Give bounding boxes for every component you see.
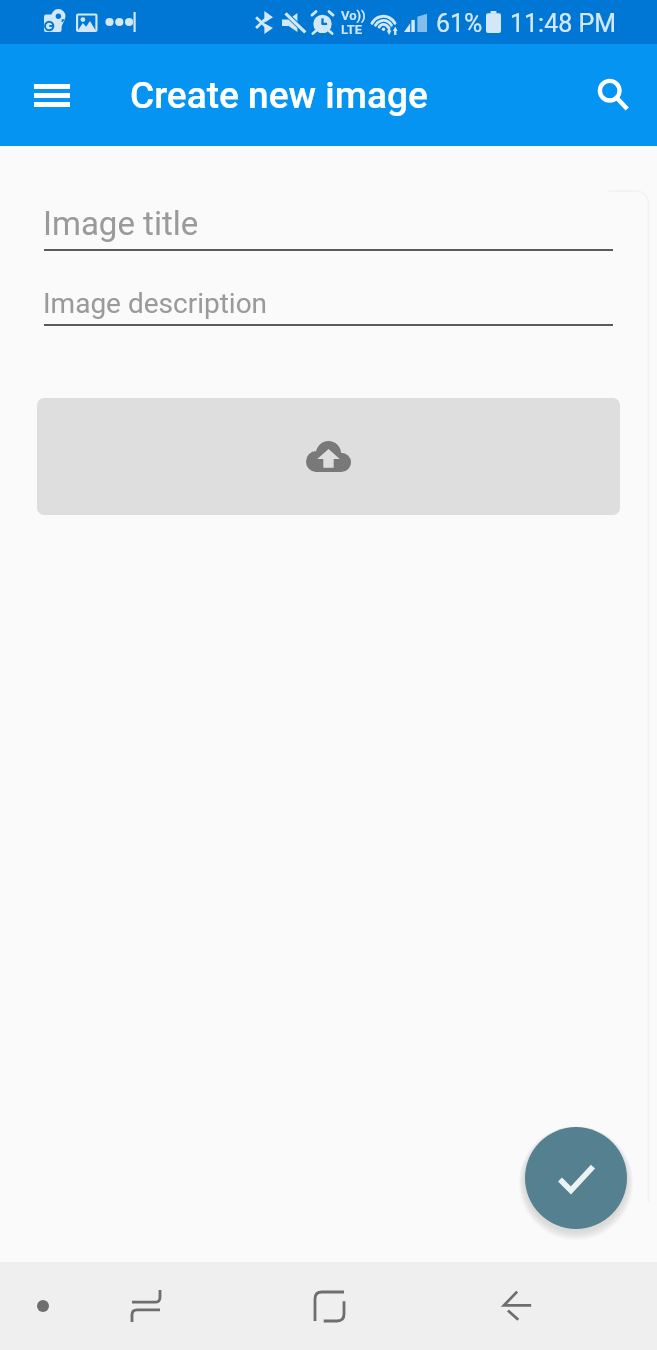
staticText: 61% bbox=[436, 9, 483, 38]
staticText: Vo)) bbox=[341, 8, 366, 23]
button[interactable]: Upload image bbox=[37, 398, 620, 515]
staticText: Image title bbox=[43, 204, 199, 243]
staticText: LTE bbox=[341, 22, 362, 37]
button[interactable]: Assistant bbox=[0, 1262, 85, 1350]
button[interactable]: Back bbox=[470, 1262, 566, 1350]
staticText: Image description bbox=[43, 287, 268, 320]
button[interactable]: Recent apps bbox=[98, 1262, 194, 1350]
staticText: 11:48 PM bbox=[510, 9, 617, 38]
staticText: Create new image bbox=[130, 74, 428, 117]
button[interactable]: Search bbox=[573, 57, 649, 133]
button[interactable]: Open navigation menu bbox=[14, 57, 90, 133]
button[interactable]: Save image bbox=[525, 1127, 627, 1229]
button[interactable]: Home bbox=[281, 1262, 377, 1350]
